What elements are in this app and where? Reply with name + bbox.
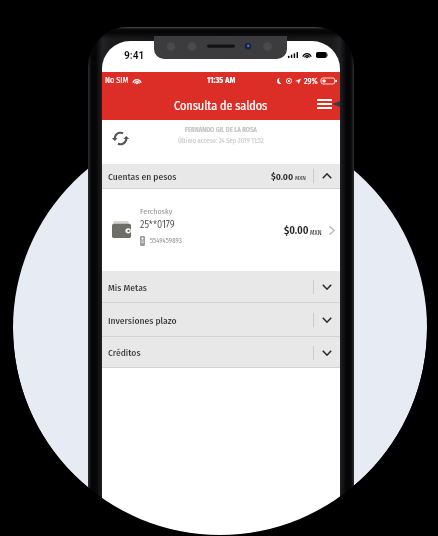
staticText: Último acceso: 24 Sep 2019 11:52 (178, 137, 264, 145)
staticText: Mis Metas (108, 282, 147, 293)
staticText: Consulta de saldos (174, 99, 268, 114)
staticText: 9:41 (124, 50, 145, 62)
staticText: 11:35 AM (207, 75, 236, 85)
button[interactable]: Open navigation menu (312, 92, 336, 116)
staticText: No SIM (105, 75, 129, 85)
staticText: MXN (310, 229, 322, 237)
staticText: 5549459893 (150, 237, 182, 245)
staticText: $0.00 (284, 224, 309, 237)
button[interactable]: Cuentas en pesos (102, 164, 340, 188)
staticText: Créditos (108, 347, 141, 358)
staticText: Ferchosky (140, 207, 173, 217)
staticText: $0.00 (271, 171, 294, 182)
staticText: MXN (295, 174, 307, 181)
button[interactable]: Refresh balances (108, 126, 133, 151)
button[interactable]: Mis Metas (102, 271, 340, 303)
staticText: Cuentas en pesos (108, 171, 177, 182)
staticText: 29% (304, 76, 318, 86)
button[interactable]: Inversiones plazo (102, 303, 340, 337)
staticText: Inversiones plazo (108, 315, 177, 326)
staticText: FERNANDO GIL DE LA ROSA (185, 126, 257, 134)
button[interactable]: Créditos (102, 337, 340, 368)
staticText: 25**0179 (140, 219, 175, 231)
button[interactable]: Ferchosky (102, 189, 340, 271)
